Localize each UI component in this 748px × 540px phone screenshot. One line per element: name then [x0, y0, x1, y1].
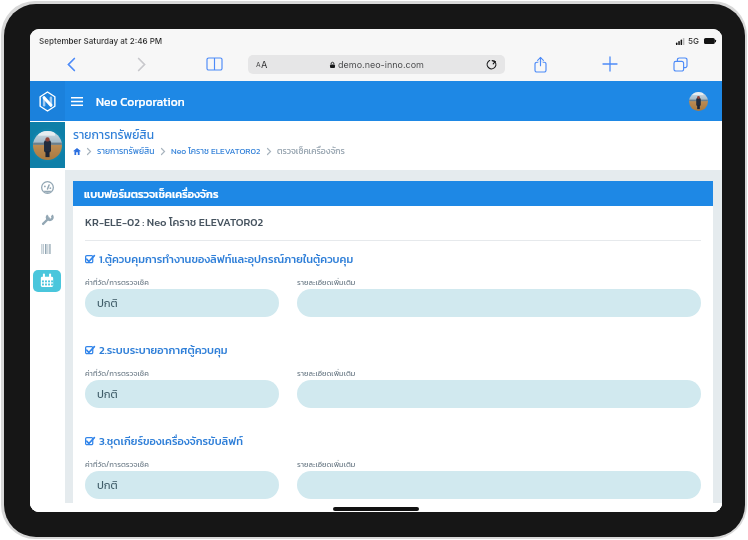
button[interactable]: Share [530, 54, 550, 74]
button[interactable]: Barcode scan [30, 238, 65, 260]
staticText: A [256, 61, 261, 69]
button[interactable]: Address bar [248, 55, 505, 74]
staticText: ค่าที่วัด/การตรวจเช็ค [85, 459, 149, 470]
button[interactable]: Additional detail [297, 471, 701, 499]
staticText: Neo Corporation [96, 93, 185, 111]
staticText: A [261, 59, 268, 70]
staticText: demo.neo-inno.com [338, 59, 424, 70]
button[interactable]: Back [61, 54, 82, 75]
button[interactable]: Maintenance [30, 208, 65, 230]
staticText: รายละเอียดเพิ่มเติม [297, 277, 356, 288]
staticText: ปกติ [97, 295, 118, 311]
staticText: ปกติ [97, 477, 118, 493]
staticText: ตรวจเช็คเครื่องจักร [277, 145, 345, 158]
staticText: 2.ระบบระบายอากาศตู้ควบคุม [99, 342, 228, 358]
staticText: รายละเอียดเพิ่มเติม [297, 459, 356, 470]
staticText: แบบฟอร์มตรวจเช็คเครื่องจักร [84, 186, 219, 202]
staticText: ค่าที่วัด/การตรวจเช็ค [85, 277, 149, 288]
staticText: รายการทรัพย์สิน [97, 145, 155, 158]
button[interactable]: Measured value [85, 380, 279, 408]
button[interactable]: Bookmarks [204, 54, 224, 74]
staticText: 1.ตู้ควบคุมการทำงานของลิฟท์และอุปกรณ์ภาย… [99, 251, 354, 267]
button[interactable]: Menu [67, 81, 87, 101]
button[interactable]: Account [689, 92, 708, 111]
button[interactable]: Additional detail [297, 289, 701, 317]
staticText: 3.ชุดเกียร์ของเครื่องจักรขับลิฟท์ [99, 433, 244, 449]
button[interactable]: Neo logo [30, 81, 65, 121]
button[interactable]: Schedule [33, 270, 61, 292]
button[interactable]: Additional detail [297, 380, 701, 408]
button[interactable]: Dashboard [30, 176, 65, 198]
button[interactable]: Measured value [85, 471, 279, 499]
staticText: ปกติ [97, 386, 118, 402]
staticText: รายการทรัพย์สิน [73, 126, 154, 144]
button[interactable]: Show tabs [670, 54, 690, 74]
staticText: รายละเอียดเพิ่มเติม [297, 368, 356, 379]
staticText: September Saturday at 2:46 PM [39, 36, 163, 46]
button[interactable]: New tab [600, 54, 620, 74]
staticText: ค่าที่วัด/การตรวจเช็ค [85, 368, 149, 379]
button[interactable]: Measured value [85, 289, 279, 317]
staticText: 5G [688, 36, 700, 46]
button[interactable]: Forward [131, 54, 151, 74]
staticText: Neo โคราช ELEVATOR02 [171, 145, 261, 158]
staticText: KR-ELE-02 : Neo โคราช ELEVATOR02 [85, 214, 264, 230]
